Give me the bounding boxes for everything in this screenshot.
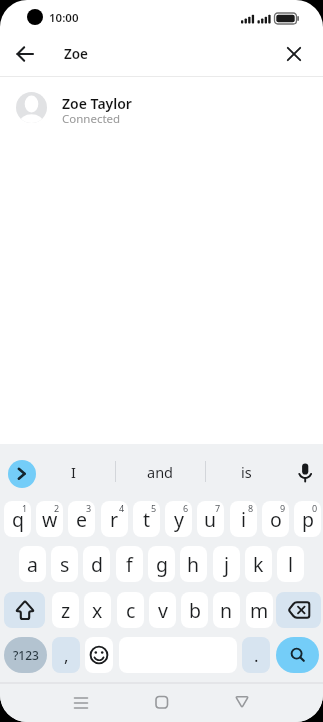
button[interactable]: Zoe: [64, 45, 124, 63]
staticText: ,: [64, 644, 69, 667]
staticText: s: [60, 551, 70, 578]
staticText: Zoe Taylor: [62, 94, 132, 113]
staticText: m: [250, 597, 269, 624]
button[interactable]: e: [68, 501, 95, 537]
button[interactable]: w: [36, 501, 63, 537]
button[interactable]: .: [242, 637, 270, 673]
staticText: z: [61, 597, 71, 624]
button[interactable]: y: [165, 501, 192, 537]
staticText: q: [12, 506, 24, 533]
staticText: .: [254, 644, 259, 667]
staticText: l: [288, 551, 294, 578]
button[interactable]: u: [197, 501, 224, 537]
button[interactable]: o: [262, 501, 289, 537]
button[interactable]: t: [133, 501, 160, 537]
staticText: ?123: [13, 647, 39, 663]
button[interactable]: and: [116, 461, 205, 483]
button[interactable]: ,: [52, 637, 80, 673]
staticText: I: [71, 462, 76, 482]
staticText: o: [270, 506, 282, 533]
staticText: v: [158, 597, 168, 624]
staticText: 4: [119, 502, 125, 514]
button[interactable]: d: [83, 546, 110, 582]
staticText: 6: [183, 502, 189, 514]
staticText: r: [110, 506, 119, 533]
button[interactable]: l: [277, 546, 304, 582]
button[interactable]: c: [117, 592, 144, 628]
button[interactable]: p: [294, 501, 321, 537]
staticText: e: [76, 506, 87, 533]
staticText: i: [241, 506, 247, 533]
staticText: h: [187, 551, 200, 578]
button[interactable]: i: [230, 501, 257, 537]
button[interactable]: [71, 692, 91, 714]
staticText: 2: [54, 502, 60, 514]
staticText: and: [147, 462, 174, 482]
staticText: Connected: [62, 111, 121, 127]
button[interactable]: [9, 40, 41, 68]
button[interactable]: [4, 592, 45, 628]
staticText: 0: [312, 502, 318, 514]
staticText: c: [126, 597, 136, 624]
staticText: f: [126, 551, 133, 578]
staticText: 10:00: [49, 10, 79, 25]
button[interactable]: [231, 691, 253, 713]
button[interactable]: [276, 592, 321, 628]
button[interactable]: I: [40, 461, 106, 483]
staticText: 3: [86, 502, 92, 514]
button[interactable]: s: [51, 546, 78, 582]
button[interactable]: x: [84, 592, 111, 628]
button[interactable]: a: [19, 546, 46, 582]
staticText: x: [92, 597, 103, 624]
staticText: 8: [248, 502, 254, 514]
staticText: 5: [151, 502, 157, 514]
staticText: t: [143, 506, 151, 533]
button[interactable]: [276, 637, 319, 673]
button[interactable]: n: [213, 592, 240, 628]
button[interactable]: j: [213, 546, 240, 582]
button[interactable]: z: [52, 592, 79, 628]
button[interactable]: b: [181, 592, 208, 628]
staticText: n: [220, 597, 233, 624]
staticText: 9: [280, 502, 286, 514]
button[interactable]: [8, 460, 36, 488]
staticText: k: [253, 551, 264, 578]
staticText: is: [241, 462, 252, 482]
staticText: a: [27, 551, 38, 578]
button[interactable]: v: [149, 592, 176, 628]
button[interactable]: ?123: [4, 637, 47, 673]
button[interactable]: k: [245, 546, 272, 582]
button[interactable]: m: [246, 592, 273, 628]
staticText: p: [302, 506, 314, 533]
button[interactable]: r: [101, 501, 128, 537]
staticText: d: [91, 551, 103, 578]
button[interactable]: [293, 458, 318, 486]
staticText: y: [174, 506, 184, 533]
staticText: 7: [215, 502, 221, 514]
button[interactable]: g: [148, 546, 175, 582]
staticText: b: [189, 597, 201, 624]
staticText: Zoe: [64, 45, 89, 63]
button[interactable]: [151, 691, 172, 713]
staticText: w: [42, 506, 58, 533]
button[interactable]: h: [180, 546, 207, 582]
button[interactable]: is: [212, 461, 280, 483]
button[interactable]: [85, 637, 113, 673]
staticText: 1: [22, 502, 28, 514]
button[interactable]: Zoe Taylor: [0, 84, 323, 130]
button[interactable]: f: [116, 546, 143, 582]
staticText: u: [204, 506, 217, 533]
button[interactable]: [280, 40, 308, 68]
button[interactable]: q: [4, 501, 31, 537]
staticText: j: [224, 551, 230, 578]
staticText: g: [156, 551, 168, 578]
